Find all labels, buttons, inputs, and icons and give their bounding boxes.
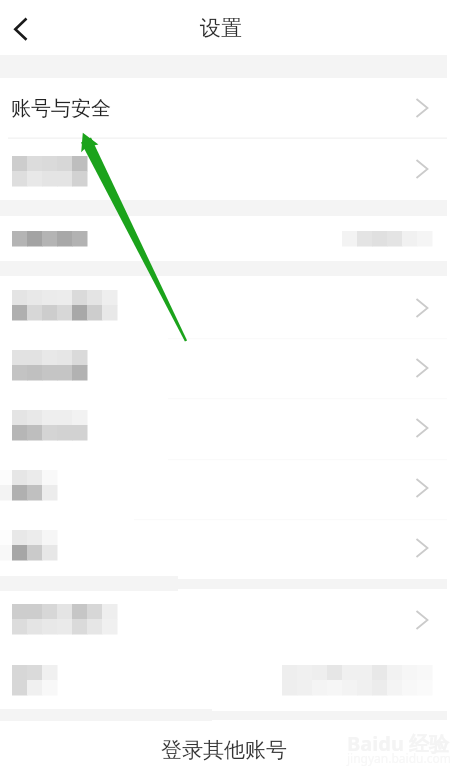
staticText: 设置 xyxy=(200,15,242,41)
button[interactable]: Settings item xyxy=(0,336,466,396)
button[interactable]: Settings item xyxy=(0,456,466,516)
staticText: 账号与安全 xyxy=(11,96,111,121)
button[interactable]: Back xyxy=(0,0,52,55)
button[interactable]: 登录其他账号 xyxy=(0,719,466,775)
button[interactable]: 账号与安全 xyxy=(0,78,466,138)
button[interactable]: Settings item xyxy=(0,649,466,708)
staticText: Baidu 经验 xyxy=(347,730,450,757)
button[interactable]: Settings item xyxy=(0,138,466,200)
staticText: 登录其他账号 xyxy=(161,737,287,763)
staticText: jingyan.baidu.com xyxy=(347,750,451,766)
button[interactable]: Settings item xyxy=(0,276,466,336)
button[interactable]: Settings item xyxy=(0,516,466,576)
button[interactable]: Settings item xyxy=(0,216,466,261)
button[interactable]: Settings item xyxy=(0,396,466,456)
button[interactable]: Settings item xyxy=(0,590,466,649)
